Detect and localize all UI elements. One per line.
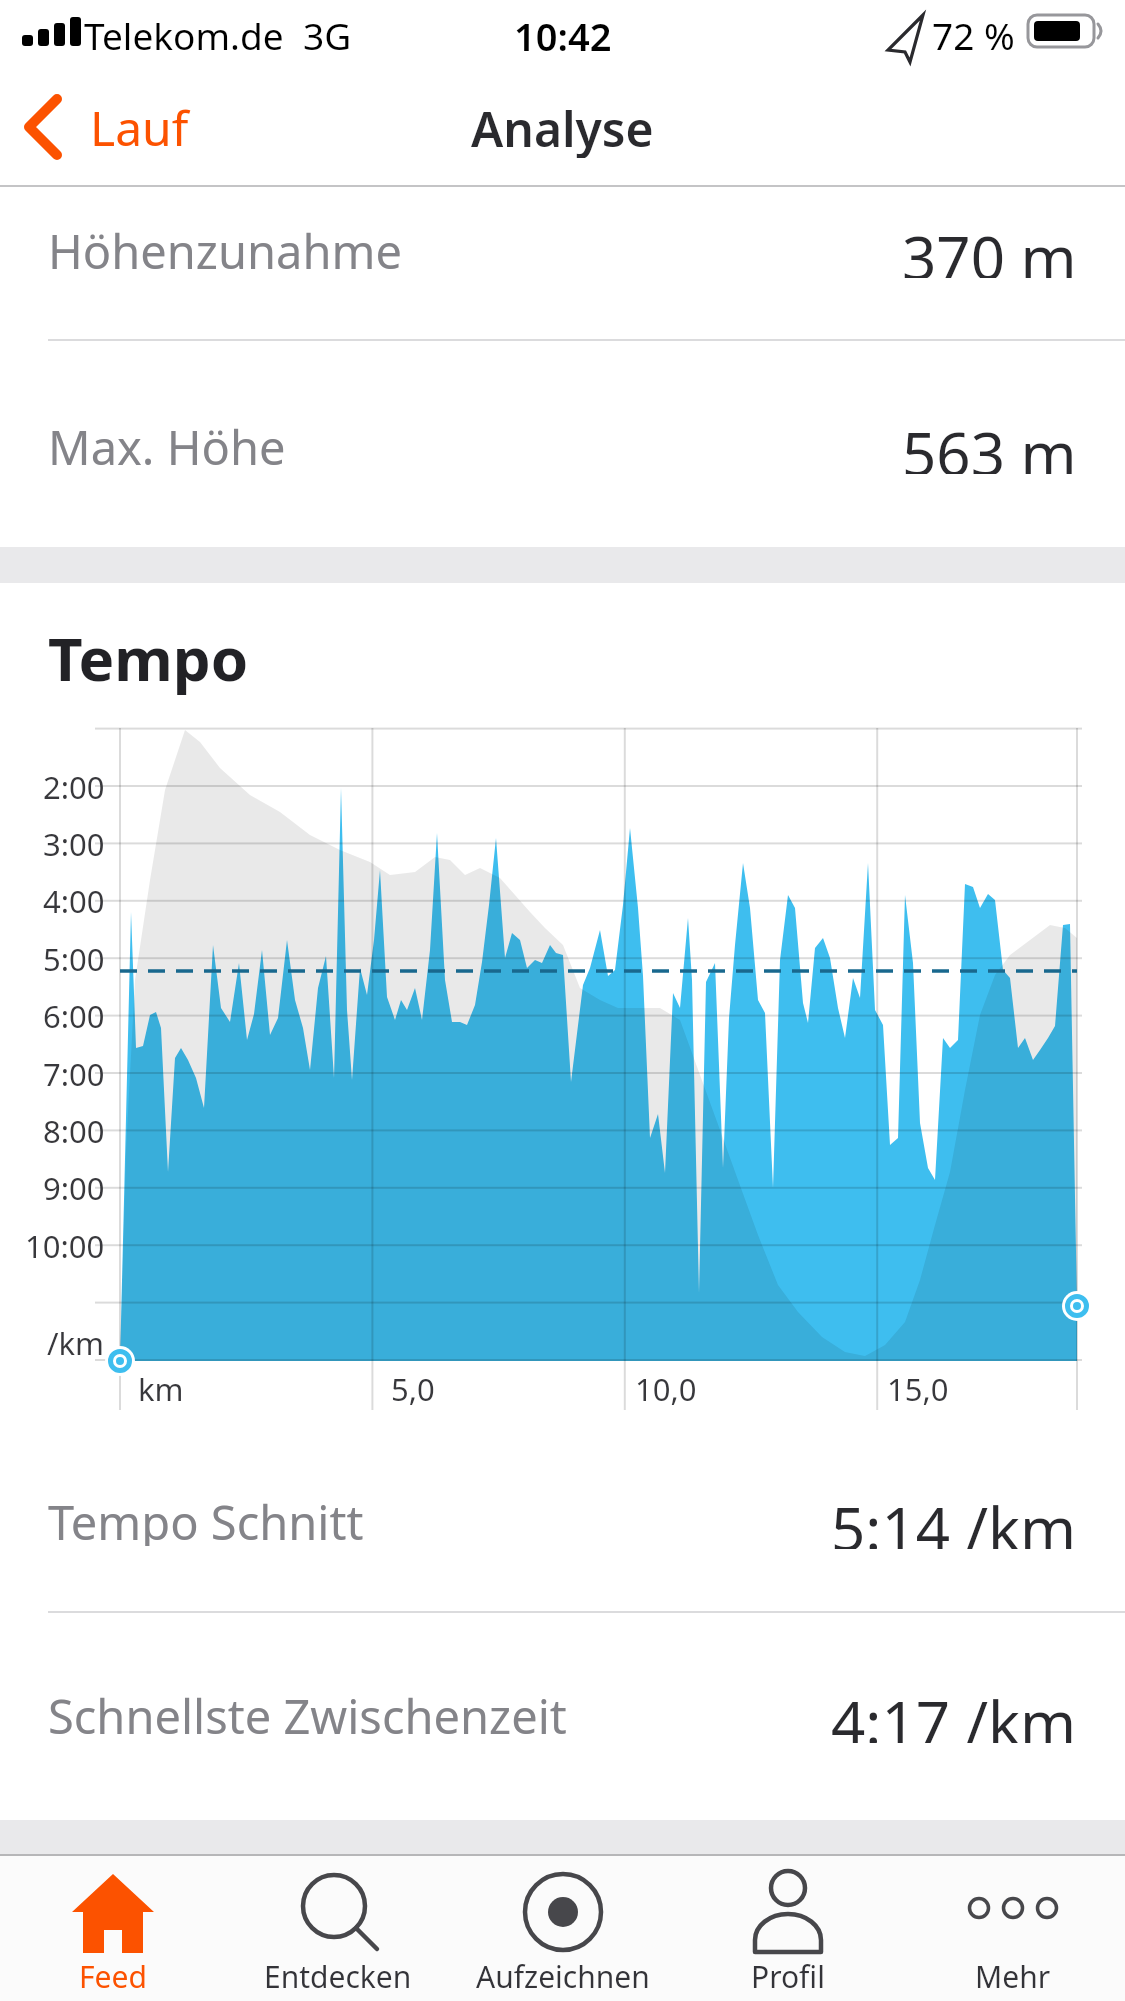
staticText: Höhenzunahme bbox=[48, 219, 402, 275]
staticText: 563 m bbox=[902, 412, 1077, 474]
staticText: 7:00 bbox=[43, 1053, 105, 1093]
staticText: km bbox=[138, 1368, 184, 1410]
staticText: Max. Höhe bbox=[48, 415, 286, 471]
staticText: Lauf bbox=[90, 95, 189, 160]
staticText: 4:17 /km bbox=[831, 1681, 1077, 1743]
staticText: 9:00 bbox=[43, 1167, 105, 1207]
staticText: 6:00 bbox=[43, 995, 105, 1035]
staticText: 4:00 bbox=[43, 880, 105, 920]
staticText: 10:42 bbox=[514, 10, 612, 54]
staticText: 2:00 bbox=[43, 766, 105, 806]
staticText: 8:00 bbox=[43, 1110, 105, 1150]
staticText: 72 % bbox=[932, 10, 1015, 54]
staticText: 5,0 bbox=[391, 1368, 435, 1410]
staticText: Schnellste Zwischenzeit bbox=[48, 1684, 567, 1740]
staticText: Telekom.de bbox=[84, 10, 284, 54]
staticText: Feed bbox=[79, 1956, 147, 1997]
staticText: Aufzeichnen bbox=[476, 1956, 650, 1997]
staticText: 10:00 bbox=[25, 1225, 105, 1265]
staticText: 5:14 /km bbox=[831, 1487, 1077, 1549]
staticText: /km bbox=[47, 1322, 105, 1362]
staticText: 5:00 bbox=[43, 938, 105, 978]
button[interactable]: Aufzeichnen bbox=[450, 1856, 675, 2001]
staticText: Entdecken bbox=[264, 1956, 412, 1997]
staticText: Analyse bbox=[471, 96, 654, 158]
staticText: 3:00 bbox=[43, 823, 105, 863]
staticText: Tempo bbox=[48, 617, 249, 699]
staticText: 370 m bbox=[902, 216, 1077, 278]
button[interactable]: Feed bbox=[0, 1856, 225, 2001]
staticText: Tempo Schnitt bbox=[48, 1490, 364, 1546]
staticText: 10,0 bbox=[635, 1368, 697, 1410]
staticText: 15,0 bbox=[887, 1368, 949, 1410]
staticText: 3G bbox=[303, 10, 352, 54]
staticText: Mehr bbox=[975, 1956, 1051, 1997]
button[interactable]: Profil bbox=[675, 1856, 900, 2001]
button[interactable]: Lauf bbox=[14, 90, 189, 164]
button[interactable]: Mehr bbox=[900, 1856, 1125, 2001]
staticText: Profil bbox=[751, 1956, 825, 1997]
button[interactable]: Entdecken bbox=[225, 1856, 450, 2001]
